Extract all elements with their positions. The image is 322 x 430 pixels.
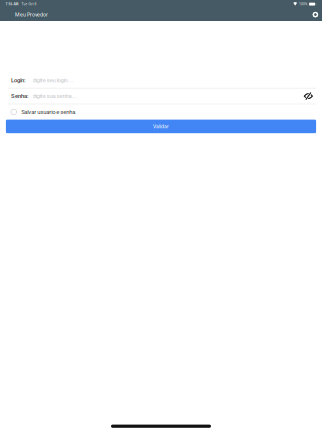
staticText: digite sua senha...	[32, 93, 77, 100]
staticText: Meu Provedor	[15, 12, 48, 18]
button[interactable]: Mostrar senha	[301, 89, 316, 104]
button[interactable]: Salvar usuario e senha	[6, 104, 316, 120]
staticText: Salvar usuario e senha	[21, 109, 75, 115]
staticText: digite seu login...	[32, 77, 73, 84]
staticText: Tue Oct 8	[18, 2, 36, 6]
staticText: 7:56 AM	[5, 2, 18, 6]
staticText: 100%	[297, 2, 309, 6]
staticText: Validar	[153, 123, 169, 129]
staticText: Login:	[11, 77, 26, 84]
button[interactable]: Validar	[6, 120, 316, 133]
button[interactable]: Configurações	[309, 8, 322, 21]
staticText: Senha:	[11, 93, 29, 100]
